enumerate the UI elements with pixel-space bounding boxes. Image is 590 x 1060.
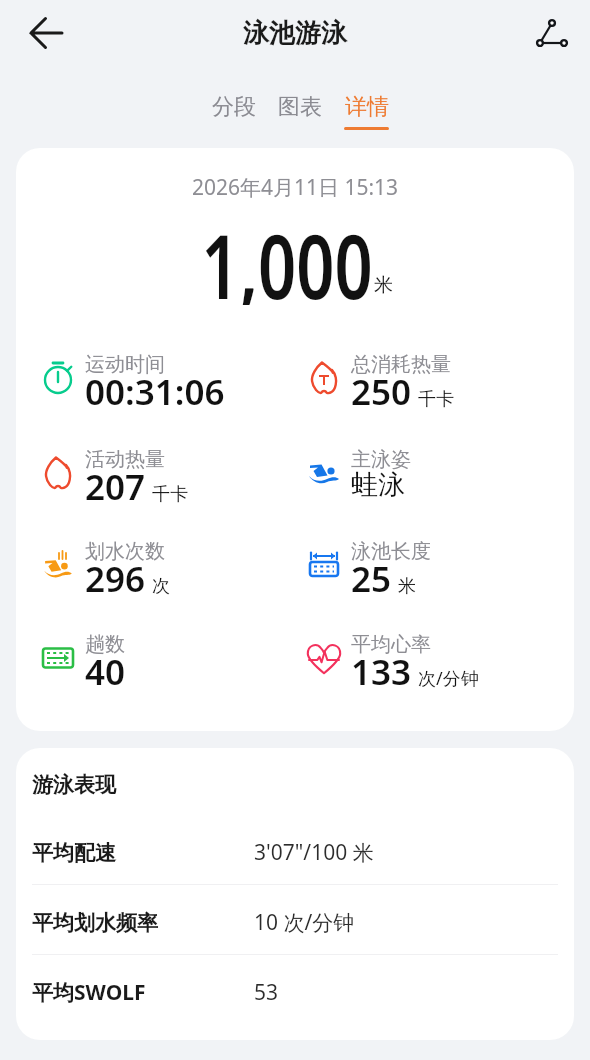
button[interactable]: 划水次数: [40, 539, 170, 612]
staticText: 207: [85, 463, 146, 511]
staticText: 53: [254, 978, 279, 1007]
button[interactable]: 趟数: [40, 632, 126, 705]
button[interactable]: 活动热量: [40, 447, 188, 520]
button[interactable]: 泳池长度: [306, 539, 431, 612]
button[interactable]: Share: [524, 7, 576, 59]
staticText: 40: [85, 648, 126, 696]
staticText: 10 次/分钟: [254, 908, 355, 937]
button[interactable]: 详情: [333, 93, 400, 130]
staticText: 总消耗热量: [351, 352, 451, 377]
staticText: 趟数: [85, 632, 125, 657]
button[interactable]: 平均配速: [32, 813, 558, 883]
staticText: 平均心率: [351, 632, 431, 657]
staticText: 296: [85, 555, 146, 603]
staticText: 泳池长度: [351, 539, 431, 564]
button[interactable]: 图表: [267, 93, 333, 127]
staticText: 分段: [212, 93, 256, 121]
staticText: 1,000: [201, 205, 373, 305]
button[interactable]: 平均SWOLF: [32, 953, 558, 1023]
staticText: 次/分钟: [418, 666, 479, 691]
staticText: 游泳表现: [32, 772, 116, 798]
staticText: 250: [351, 368, 412, 416]
staticText: 00:31:06: [85, 368, 225, 416]
staticText: 泳池游泳: [243, 17, 347, 50]
button[interactable]: 运动时间: [40, 352, 225, 425]
button[interactable]: 总消耗热量: [306, 352, 454, 425]
staticText: 次: [152, 575, 170, 598]
button[interactable]: 平均心率: [306, 632, 479, 705]
staticText: 平均划水频率: [32, 910, 254, 936]
button[interactable]: 平均划水频率: [32, 883, 558, 953]
button[interactable]: 主泳姿: [306, 447, 411, 506]
staticText: 详情: [345, 93, 389, 121]
staticText: 千卡: [418, 388, 454, 411]
staticText: 2026年4月11日 15:13: [16, 173, 574, 202]
staticText: 米: [398, 575, 416, 598]
staticText: 图表: [278, 93, 322, 121]
staticText: 米: [374, 273, 393, 297]
staticText: 25: [351, 555, 392, 603]
staticText: 千卡: [152, 483, 188, 506]
staticText: 蛙泳: [351, 468, 405, 502]
button[interactable]: 分段: [201, 93, 267, 127]
staticText: 133: [351, 648, 412, 696]
staticText: 划水次数: [85, 539, 165, 564]
staticText: 平均配速: [32, 840, 254, 866]
staticText: 主泳姿: [351, 447, 411, 472]
staticText: 平均SWOLF: [32, 978, 254, 1007]
staticText: 活动热量: [85, 447, 165, 472]
button[interactable]: Back: [20, 8, 70, 58]
staticText: 运动时间: [85, 352, 165, 377]
staticText: 3'07"/100 米: [254, 838, 374, 867]
